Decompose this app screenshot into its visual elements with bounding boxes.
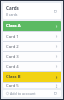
button[interactable]: Class B bbox=[3, 72, 61, 82]
button[interactable]: Card 5 bbox=[3, 83, 61, 88]
staticText: Class B bbox=[6, 74, 55, 80]
staticText: Class A bbox=[6, 23, 55, 29]
button[interactable]: More options bbox=[53, 9, 58, 14]
button[interactable]: Card 1 bbox=[3, 32, 61, 41]
button[interactable]: Settings bbox=[53, 91, 58, 96]
staticText: Card 3 bbox=[6, 54, 55, 60]
staticText: Cards bbox=[6, 5, 19, 11]
button[interactable]: Class A bbox=[3, 21, 61, 31]
button[interactable]: Add to account bbox=[3, 90, 61, 97]
staticText: Add to account bbox=[10, 91, 53, 96]
staticText: Card 2 bbox=[6, 44, 55, 50]
button[interactable]: Card 2 bbox=[3, 42, 61, 51]
staticText: 8 cards bbox=[6, 12, 18, 17]
button[interactable]: Card 3 bbox=[3, 52, 61, 61]
staticText: Card 1 bbox=[6, 34, 55, 40]
button[interactable]: Cards bbox=[3, 3, 61, 19]
staticText: Card 5 bbox=[6, 83, 55, 88]
button[interactable]: Card 4 bbox=[3, 62, 61, 71]
staticText: Card 4 bbox=[6, 64, 55, 70]
